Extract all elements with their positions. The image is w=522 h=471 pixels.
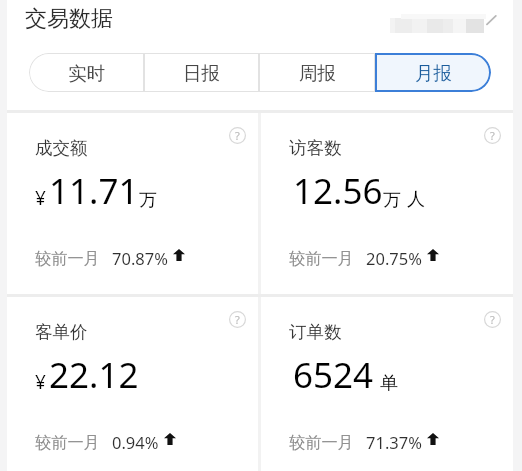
staticText: 周报 bbox=[299, 62, 336, 85]
staticText: 较前一月 bbox=[35, 248, 100, 268]
staticText: 0.94% bbox=[112, 431, 159, 453]
staticText: 万 bbox=[139, 189, 157, 212]
button[interactable]: 成交额 bbox=[7, 113, 258, 294]
staticText: 访客数 bbox=[289, 137, 342, 159]
staticText: ? bbox=[235, 312, 240, 327]
staticText: ? bbox=[490, 128, 495, 143]
button[interactable]: 周报 bbox=[259, 53, 375, 92]
staticText: 月报 bbox=[415, 62, 452, 85]
staticText: 较前一月 bbox=[289, 432, 354, 452]
button[interactable]: Help bbox=[229, 127, 246, 144]
button[interactable]: 订单数 bbox=[261, 297, 513, 471]
button[interactable]: Edit shop name bbox=[383, 10, 499, 38]
staticText: 11.71 bbox=[49, 167, 139, 215]
staticText: 70.87% bbox=[112, 247, 168, 269]
button[interactable]: Help bbox=[229, 311, 246, 328]
staticText: ¥ bbox=[35, 369, 46, 395]
button[interactable]: Help bbox=[484, 311, 501, 328]
staticText: ? bbox=[235, 128, 240, 143]
button[interactable]: 实时 bbox=[29, 53, 144, 92]
button[interactable]: 日报 bbox=[144, 53, 259, 92]
staticText: ¥ bbox=[35, 185, 46, 211]
staticText: 较前一月 bbox=[35, 432, 100, 452]
staticText: 成交额 bbox=[35, 137, 88, 159]
staticText: ? bbox=[490, 312, 495, 327]
staticText: 单 bbox=[380, 372, 398, 395]
staticText: 实时 bbox=[68, 62, 105, 85]
staticText: 订单数 bbox=[289, 321, 342, 343]
staticText: 6524 bbox=[293, 351, 374, 399]
staticText: 日报 bbox=[183, 62, 220, 85]
staticText: 人 bbox=[407, 188, 425, 211]
staticText: 20.75% bbox=[366, 247, 422, 269]
staticText: 12.56 bbox=[293, 167, 383, 215]
button[interactable]: Help bbox=[484, 127, 501, 144]
staticText: 万 bbox=[383, 189, 401, 212]
button[interactable]: 客单价 bbox=[7, 297, 258, 471]
staticText: 22.12 bbox=[49, 351, 139, 399]
button[interactable]: 访客数 bbox=[261, 113, 513, 294]
staticText: 交易数据 bbox=[25, 5, 113, 33]
staticText: 客单价 bbox=[35, 321, 88, 343]
staticText: 较前一月 bbox=[289, 248, 354, 268]
button[interactable]: 月报 bbox=[375, 53, 491, 92]
staticText: 71.37% bbox=[366, 431, 422, 453]
